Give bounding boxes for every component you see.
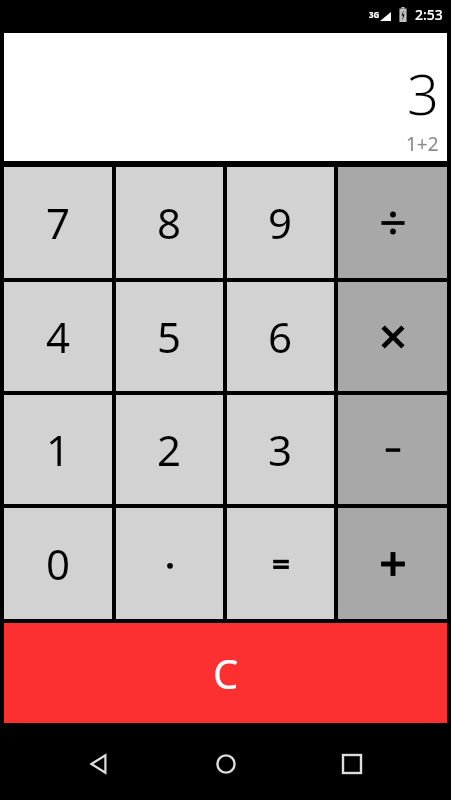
button[interactable]: Decimal point [116, 508, 223, 619]
staticText: 9 [268, 194, 293, 251]
button[interactable]: 0 [4, 508, 112, 619]
staticText: 3 [407, 55, 439, 131]
button[interactable]: Minus [338, 395, 447, 504]
other: Divide [376, 206, 410, 240]
other: Plus [376, 547, 410, 581]
button[interactable]: Multiply [338, 282, 447, 391]
staticText: 7 [46, 194, 71, 251]
button[interactable]: C [4, 623, 447, 723]
button[interactable]: 6 [227, 282, 334, 391]
staticText: 0 [46, 535, 71, 592]
staticText: 4 [46, 308, 71, 365]
button[interactable]: 1 [4, 395, 112, 504]
button[interactable]: Recent apps [324, 736, 380, 792]
staticText: 5 [157, 308, 182, 365]
other: Minus [378, 435, 408, 465]
button[interactable]: Equals [227, 508, 334, 619]
staticText: 6 [268, 308, 293, 365]
staticText: 1+2 [406, 131, 439, 157]
button[interactable]: 5 [116, 282, 223, 391]
staticText: 8 [157, 194, 182, 251]
button[interactable]: Plus [338, 508, 447, 619]
button[interactable]: 7 [4, 167, 112, 278]
button[interactable]: 8 [116, 167, 223, 278]
button[interactable]: 3 [4, 33, 447, 161]
button[interactable]: 9 [227, 167, 334, 278]
staticText: 3G [369, 9, 380, 20]
staticText: 2 [157, 421, 182, 478]
button[interactable]: 2 [116, 395, 223, 504]
other: Decimal point [155, 549, 185, 579]
button[interactable]: Back [71, 736, 127, 792]
button[interactable]: 4 [4, 282, 112, 391]
staticText: 2:53 [415, 5, 443, 24]
button[interactable]: Divide [338, 167, 447, 278]
other: Multiply [378, 322, 408, 352]
staticText: 3 [268, 421, 293, 478]
other: Equals [266, 549, 296, 579]
button[interactable]: Home [198, 736, 254, 792]
staticText: 1 [46, 421, 71, 478]
staticText: C [213, 646, 239, 700]
button[interactable]: 3 [227, 395, 334, 504]
